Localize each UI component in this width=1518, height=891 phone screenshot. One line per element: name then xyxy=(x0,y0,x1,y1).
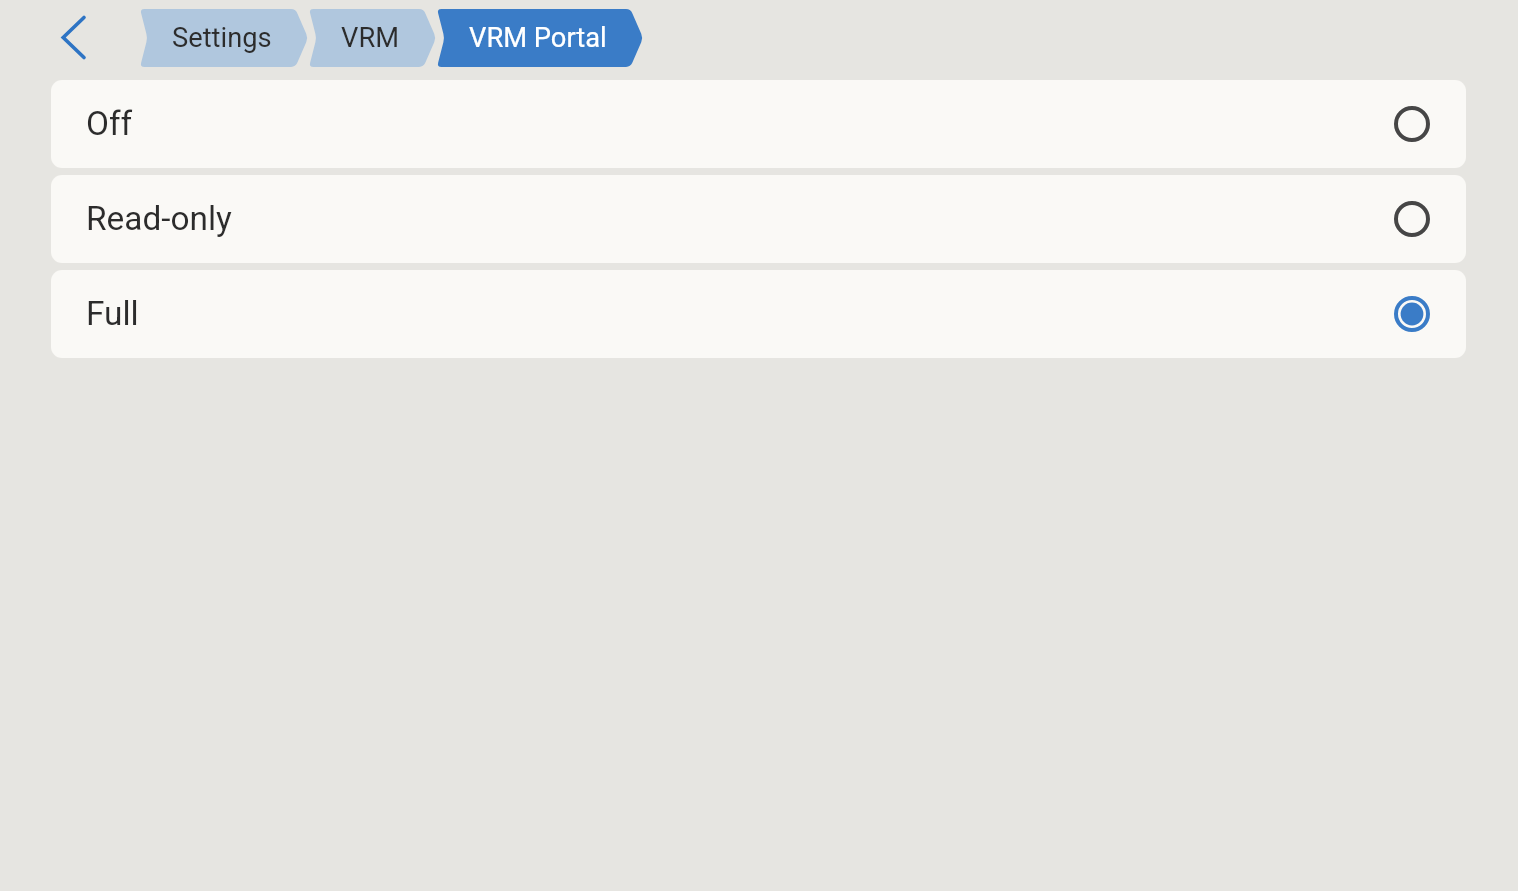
button[interactable]: Off xyxy=(51,80,1466,168)
other: Not selected xyxy=(1394,106,1430,142)
button[interactable]: VRM Portal xyxy=(437,9,643,67)
button[interactable]: Back xyxy=(50,13,100,63)
staticText: Read-only xyxy=(86,199,232,238)
staticText: Full xyxy=(86,294,139,333)
staticText: VRM Portal xyxy=(469,22,607,54)
other: Selected xyxy=(1394,296,1430,332)
staticText: Off xyxy=(86,104,133,143)
other: Not selected xyxy=(1394,201,1430,237)
button[interactable]: Settings xyxy=(140,9,308,67)
button[interactable]: Read-only xyxy=(51,175,1466,263)
button[interactable]: Full xyxy=(51,270,1466,358)
button[interactable]: VRM xyxy=(309,9,436,67)
staticText: Settings xyxy=(172,22,272,54)
staticText: VRM xyxy=(341,22,400,54)
